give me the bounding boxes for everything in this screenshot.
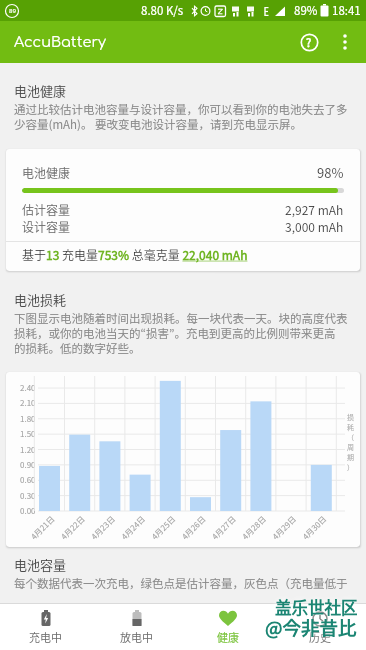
staticText: 估计容量: [22, 201, 71, 218]
staticText: 电池健康: [22, 164, 71, 181]
staticText: 历史: [309, 629, 331, 645]
button[interactable]: 历史: [274, 604, 366, 650]
button[interactable]: 放电中: [91, 604, 182, 650]
staticText: 3,000 mAh: [285, 218, 344, 235]
staticText: 每个数据代表一次充电，绿色点是估计容量，灰色点（充电量低于: [14, 575, 348, 592]
staticText: AccuBattery: [14, 34, 107, 50]
staticText: 盖乐世社区: [275, 595, 358, 619]
staticText: 8.80 K/s: [141, 2, 184, 19]
staticText: 18:41: [332, 2, 361, 19]
staticText: 电池损耗: [14, 290, 67, 309]
staticText: 89%: [294, 2, 318, 19]
button[interactable]: 健康: [182, 604, 274, 650]
staticText: ?: [306, 34, 312, 50]
staticText: 98%: [317, 163, 344, 182]
staticText: 设计容量: [22, 218, 71, 235]
staticText: 充电中: [29, 629, 62, 645]
staticText: 健康: [217, 629, 239, 645]
staticText: 下图显示电池随着时间出现损耗。每一块代表一天。块的高度代表 损耗，或你的电池当天…: [14, 310, 348, 356]
staticText: 89: [9, 7, 16, 15]
staticText: @今非昔比: [265, 614, 357, 641]
button[interactable]: ?: [296, 29, 322, 55]
staticText: 基于13 充电量753% 总毫克量 22,040 mAh: [22, 246, 248, 263]
button[interactable]: [334, 31, 356, 53]
staticText: 电池健康: [14, 81, 67, 100]
staticText: 2,927 mAh: [285, 201, 344, 218]
staticText: 电池容量: [14, 555, 67, 574]
button[interactable]: 充电中: [0, 604, 91, 650]
button[interactable]: 基于13 充电量753% 总毫克量 22,040 mAh: [6, 242, 360, 271]
staticText: 放电中: [120, 629, 153, 645]
staticText: 通过比较估计电池容量与设计容量，你可以看到你的电池失去了多 少容量(mAh)。 …: [14, 101, 348, 132]
